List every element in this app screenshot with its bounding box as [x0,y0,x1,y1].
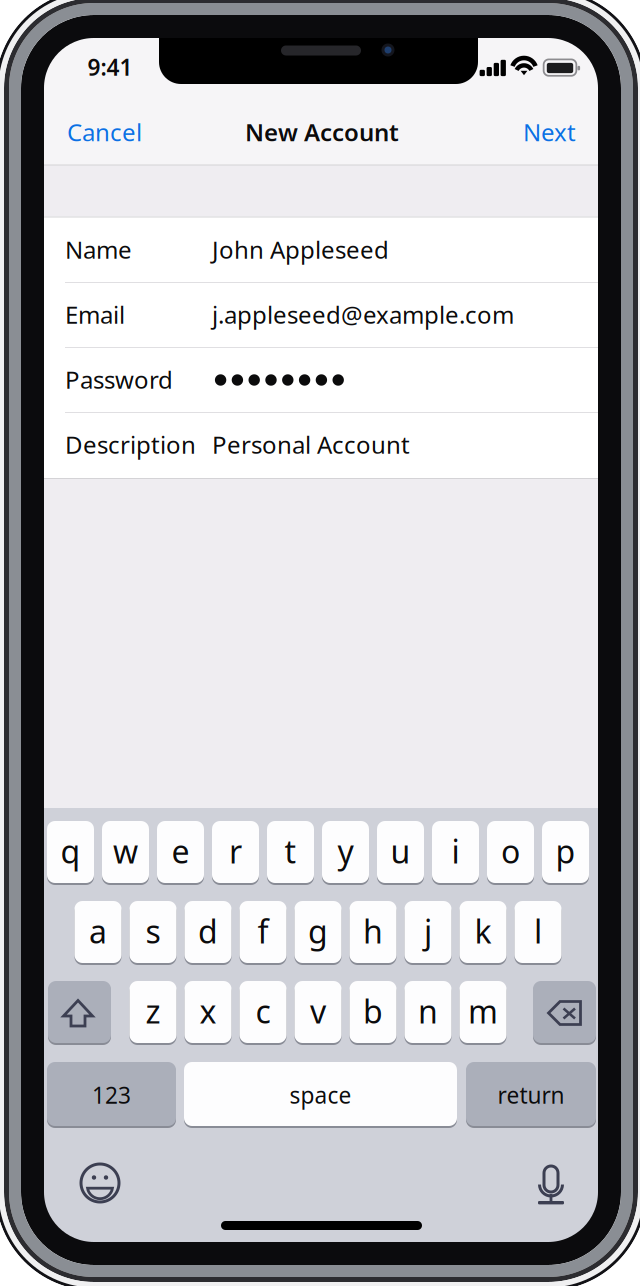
staticText: v [310,990,326,1032]
button[interactable]: l [0,0,640,1286]
button[interactable]: return [0,0,640,1286]
staticText: t [284,830,296,872]
staticText: Name [65,234,132,265]
button[interactable]: v [0,0,640,1286]
button[interactable]: r [0,0,640,1286]
staticText: space [289,1080,351,1110]
staticText: c [255,990,270,1032]
staticText: w [113,830,138,872]
staticText: e [171,830,189,872]
staticText: Description [65,429,196,460]
button[interactable]: 123 [0,0,640,1286]
staticText: s [145,910,160,952]
button[interactable]: q [0,0,640,1286]
staticText: f [257,910,268,952]
staticText: n [418,990,438,1032]
button[interactable]: x [0,0,640,1286]
button[interactable]: k [0,0,640,1286]
button[interactable]: o [0,0,640,1286]
staticText: k [474,910,491,952]
button[interactable]: t [0,0,640,1286]
button[interactable]: m [0,0,640,1286]
button[interactable]: Emoji keyboard [0,0,640,1286]
staticText: Cancel [67,116,142,148]
button[interactable]: Next [476,102,576,162]
staticText: g [308,910,328,952]
staticText: b [363,990,383,1032]
staticText: 9:41 [87,52,132,82]
staticText: j [424,910,432,952]
button[interactable]: s [0,0,640,1286]
button[interactable]: d [0,0,640,1286]
button[interactable]: y [0,0,640,1286]
staticText: Personal Account [212,429,410,460]
staticText: x [199,990,216,1032]
staticText: q [60,830,80,872]
staticText: h [363,910,383,952]
button[interactable]: u [0,0,640,1286]
button[interactable]: p [0,0,640,1286]
staticText: i [451,830,459,872]
staticText: j.appleseed@example.com [212,299,514,330]
staticText: l [534,910,542,952]
staticText: Password [65,364,173,395]
button[interactable]: f [0,0,640,1286]
button[interactable]: Password [44,347,598,412]
staticText: o [501,830,520,872]
button[interactable]: Description [44,412,598,477]
staticText: 123 [92,1080,131,1110]
staticText: m [468,990,498,1032]
button[interactable]: n [0,0,640,1286]
staticText: John Appleseed [212,234,389,265]
button[interactable]: j [0,0,640,1286]
button[interactable]: Shift [0,0,640,1286]
staticText: y [337,830,353,872]
button[interactable]: z [0,0,640,1286]
button[interactable]: Email [44,282,598,347]
button[interactable]: h [0,0,640,1286]
button[interactable]: c [0,0,640,1286]
button[interactable]: Delete [0,0,640,1286]
button[interactable]: w [0,0,640,1286]
staticText: u [390,830,410,872]
staticText: a [89,910,107,952]
staticText: Next [523,116,576,148]
staticText: d [198,910,218,952]
button[interactable]: Cancel [67,102,185,162]
button[interactable]: g [0,0,640,1286]
staticText: return [497,1080,564,1110]
button[interactable]: a [0,0,640,1286]
button[interactable]: Name [44,217,598,282]
staticText: p [555,830,575,872]
staticText: r [229,830,242,872]
button[interactable]: i [0,0,640,1286]
staticText: New Account [245,116,399,148]
staticText: z [145,990,160,1032]
staticText: Email [65,299,125,330]
button[interactable]: Dictation [0,0,640,1286]
button[interactable]: e [0,0,640,1286]
button[interactable]: b [0,0,640,1286]
button[interactable]: space [0,0,640,1286]
